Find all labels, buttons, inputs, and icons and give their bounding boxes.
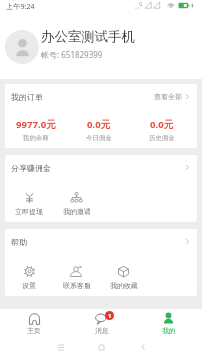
staticText: 9977.0元 [16, 118, 56, 131]
button[interactable]: 9977.0元 [5, 116, 67, 142]
staticText: 上午9:24 [6, 1, 35, 11]
button[interactable]: 我的 [135, 312, 202, 335]
staticText: 设置 [22, 281, 36, 290]
button[interactable]: 0.0元 [67, 116, 130, 142]
button[interactable]: 主页 [0, 312, 68, 335]
staticText: 分享赚佣金 [11, 163, 51, 173]
button[interactable]: 我的邀请 [53, 187, 100, 216]
button[interactable]: 联系客服 [53, 261, 100, 290]
button[interactable]: 我的订单 [5, 84, 197, 109]
button[interactable]: 办公室测试手机 [5, 14, 202, 79]
staticText: 我的余额 [23, 134, 49, 142]
staticText: 消息 [95, 326, 109, 335]
staticText: 1 [108, 312, 112, 320]
staticText: 今日佣金 [86, 134, 112, 142]
button[interactable]: 0.0元 [130, 116, 193, 142]
staticText: 我的订单 [11, 92, 43, 102]
staticText: 帮助 [11, 237, 27, 247]
staticText: 主页 [27, 326, 41, 335]
button[interactable]: 我的收藏 [100, 261, 147, 290]
button[interactable]: 设置 [5, 261, 53, 290]
staticText: 联系客服 [63, 281, 91, 290]
staticText: 0.0元 [150, 118, 174, 131]
staticText: 0.0元 [87, 118, 111, 131]
staticText: 我的 [162, 326, 176, 335]
staticText: 我的收藏 [110, 281, 138, 290]
button[interactable]: Recent apps [40, 339, 81, 355]
staticText: 历史佣金 [149, 134, 175, 142]
button[interactable]: 立即提现 [5, 187, 53, 216]
button[interactable]: Home [81, 339, 122, 355]
staticText: 帐号: 651829399 [41, 49, 103, 60]
button[interactable]: 帮助 [5, 229, 197, 254]
staticText: 立即提现 [15, 207, 43, 216]
staticText: 办公室测试手机 [41, 28, 135, 45]
button[interactable]: Back [122, 339, 163, 355]
staticText: 我的邀请 [63, 207, 91, 216]
button[interactable]: 分享赚佣金 [5, 155, 197, 180]
staticText: 查看全部 [154, 92, 182, 101]
button[interactable]: 1 [68, 312, 135, 335]
